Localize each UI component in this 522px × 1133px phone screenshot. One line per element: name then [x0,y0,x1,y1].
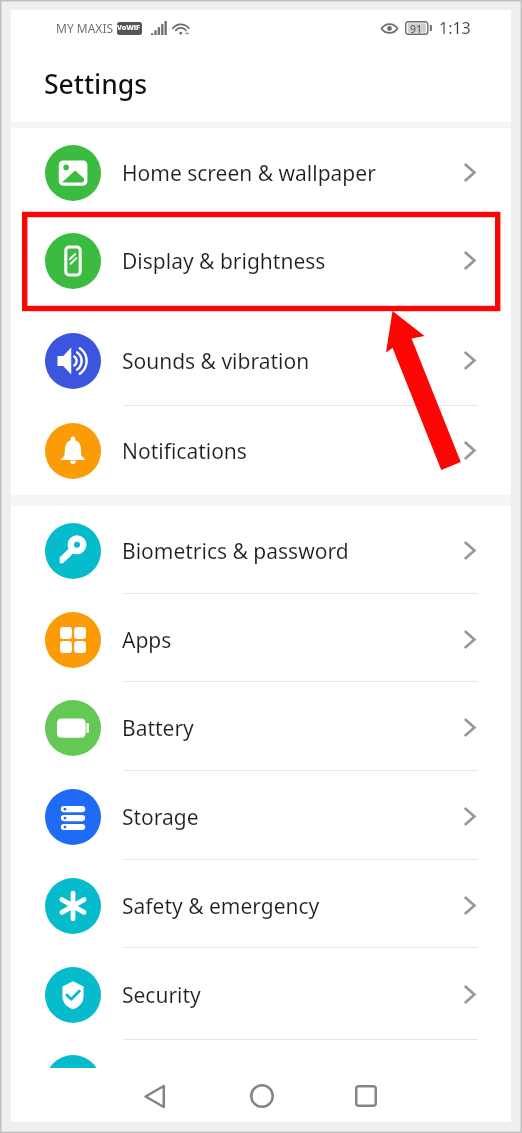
staticText: VoWiFi [117,22,142,35]
staticText: Biometrics & password [122,537,349,566]
staticText: Notifications [122,437,247,466]
staticText: Security [122,981,201,1010]
button[interactable]: Display & brightness [11,216,511,305]
button[interactable]: Biometrics & password [11,506,511,595]
button[interactable]: Recent apps [335,1069,397,1123]
staticText: Battery [122,714,194,743]
staticText: Apps [122,626,172,655]
staticText: 91 [410,22,423,36]
staticText: Sounds & vibration [122,347,310,376]
button[interactable]: Security [11,950,511,1039]
staticText: Settings [44,66,148,102]
staticText: Home screen & wallpaper [122,159,376,188]
button[interactable]: Back [124,1069,186,1123]
button[interactable]: Apps [11,595,511,684]
button[interactable]: Home screen & wallpaper [11,128,511,217]
button[interactable]: Safety & emergency [11,861,511,950]
button[interactable]: Storage [11,772,511,861]
staticText: MY MAXIS [56,20,114,36]
button[interactable]: Battery [11,683,511,772]
button[interactable]: Sounds & vibration [11,316,511,405]
staticText: Storage [122,803,199,832]
staticText: Safety & emergency [122,892,320,921]
staticText: Display & brightness [122,247,326,276]
staticText: 1:13 [439,17,471,39]
button[interactable]: Notifications [11,406,511,495]
button[interactable]: Home [231,1069,293,1123]
